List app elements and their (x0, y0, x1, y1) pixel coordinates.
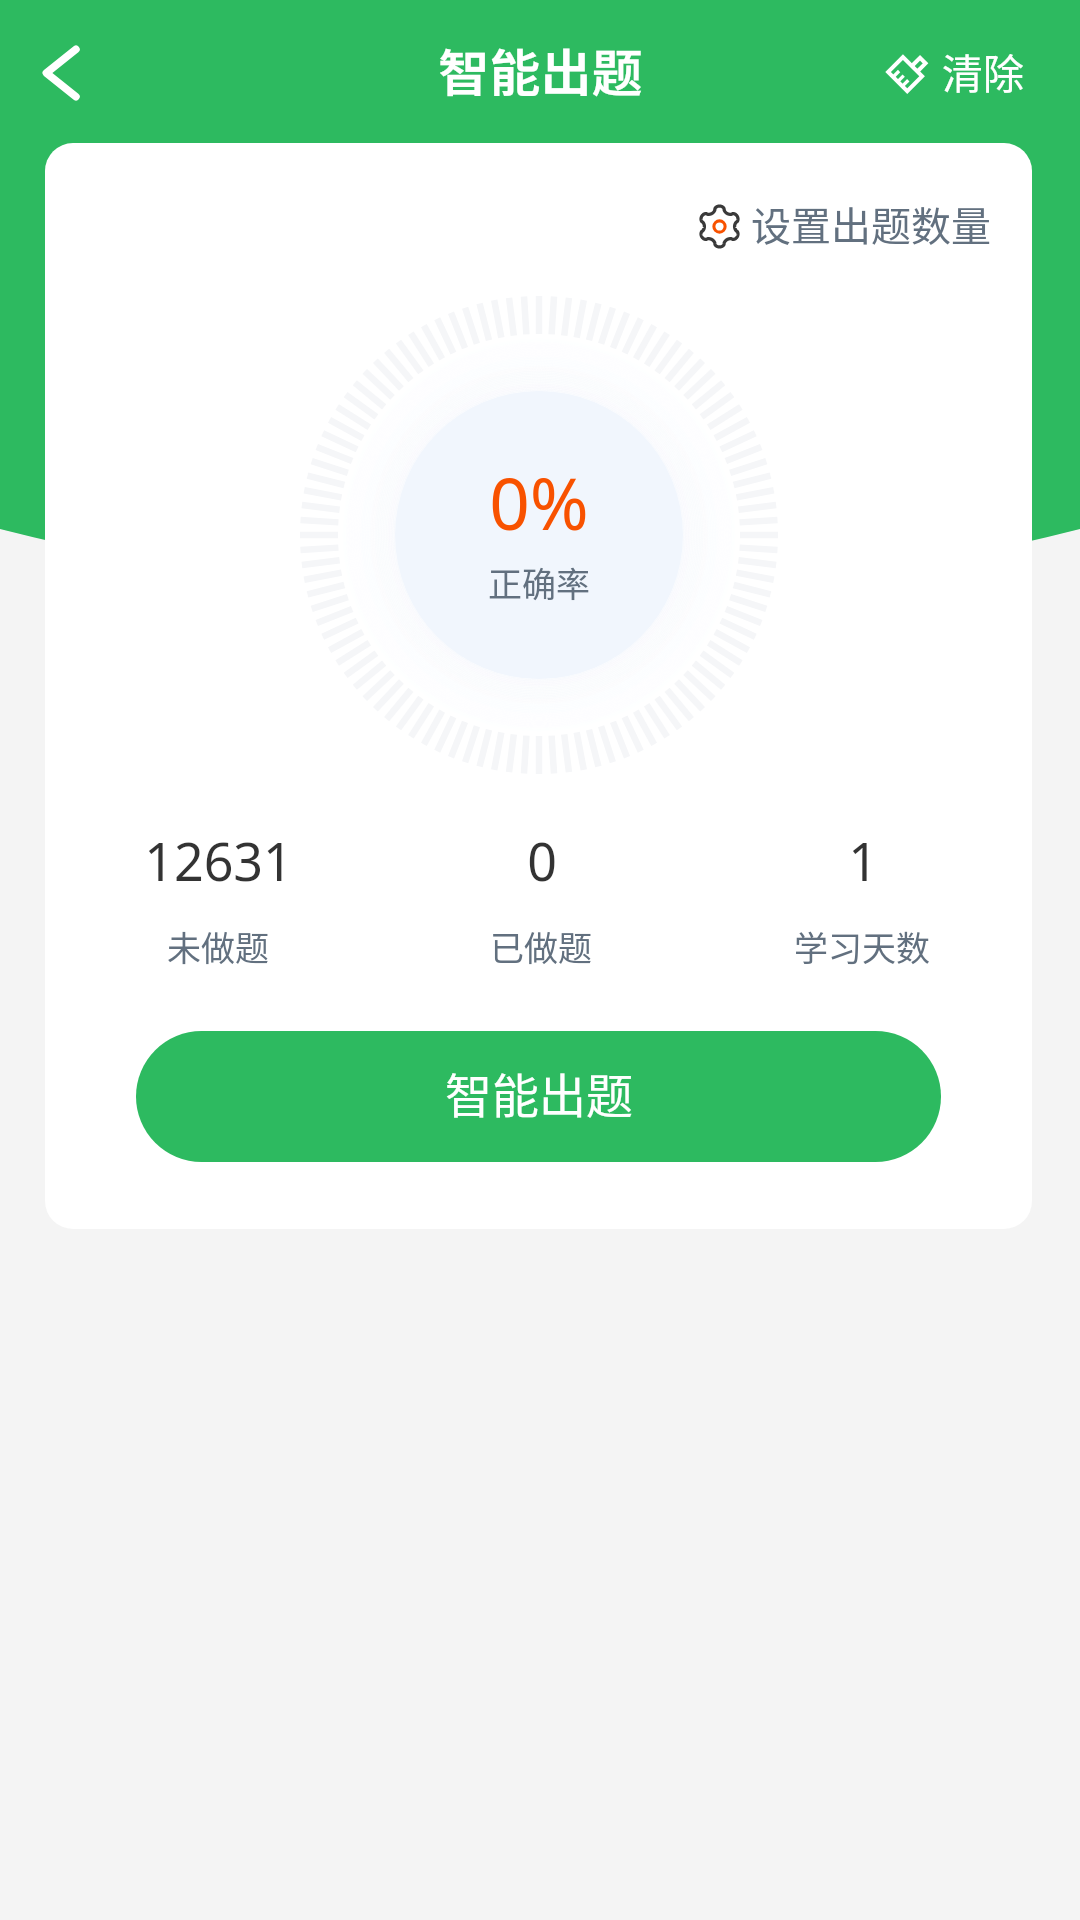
staticText: 智能出题 (445, 1058, 633, 1126)
staticText: 学习天数 (794, 922, 930, 971)
staticText: 智能出题 (438, 33, 643, 107)
staticText: 1 (848, 825, 878, 896)
button[interactable]: 智能出题 (136, 1031, 941, 1162)
staticText: 12631 (144, 825, 293, 896)
button[interactable]: 清除 Clear (873, 38, 1026, 109)
button[interactable]: 设置出题数量 Set question count (680, 188, 1000, 262)
button[interactable]: Back (23, 35, 99, 111)
staticText: 0 (527, 825, 557, 896)
staticText: 正确率 (488, 558, 590, 607)
staticText: 已做题 (490, 922, 592, 971)
staticText: 清除 (942, 41, 1024, 100)
staticText: 未做题 (167, 922, 269, 971)
staticText: 0% (489, 454, 589, 551)
staticText: 设置出题数量 (751, 195, 991, 253)
